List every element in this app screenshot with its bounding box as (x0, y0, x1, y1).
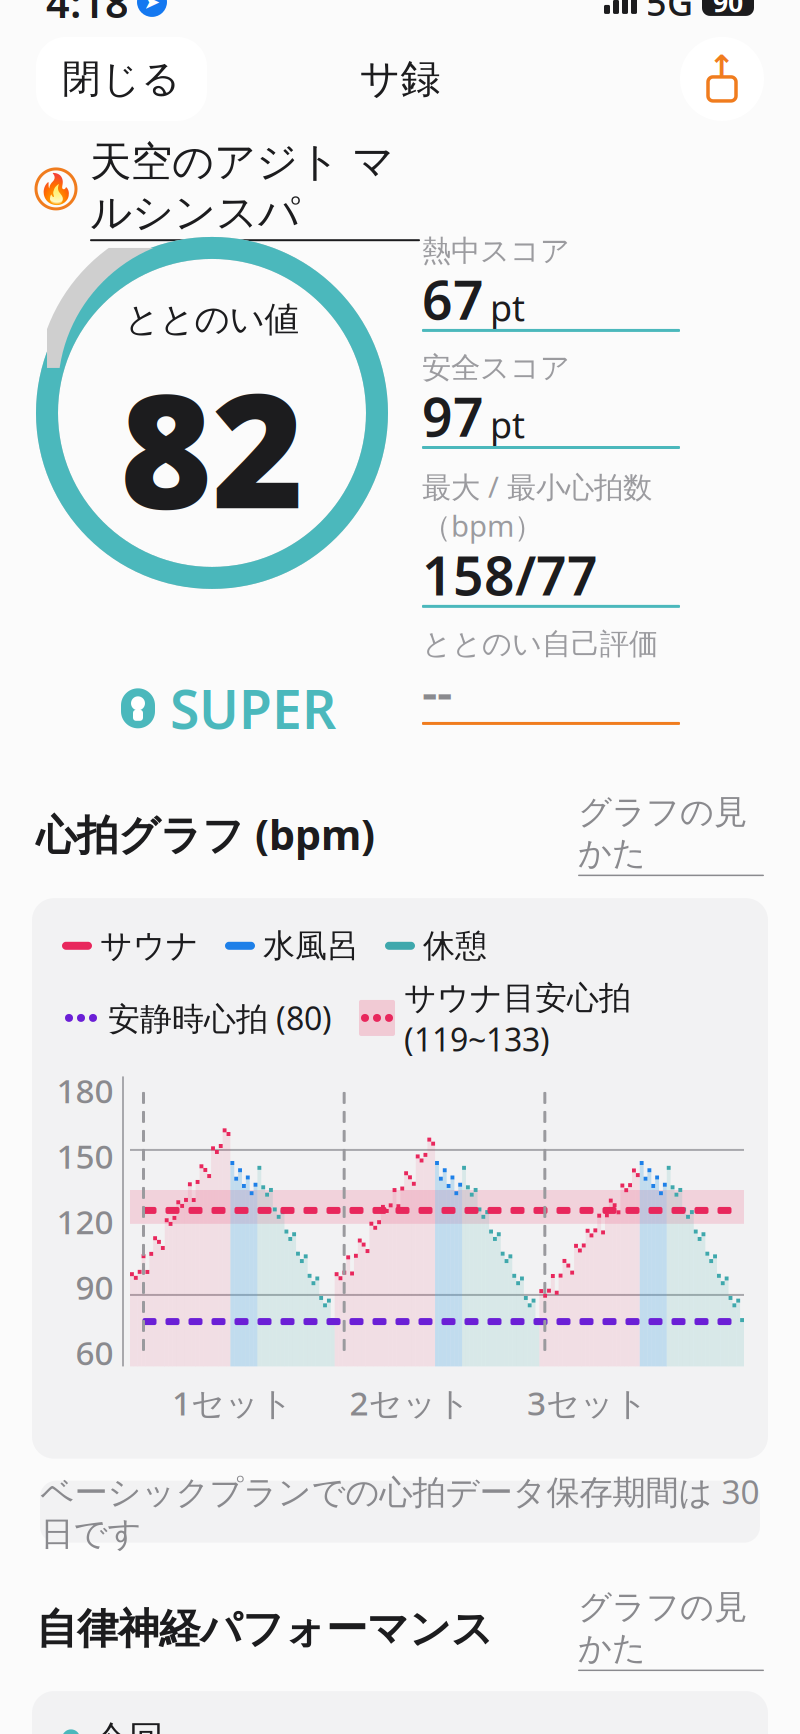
staticText: 天空のアジト マルシンスパ (90, 137, 394, 238)
staticText: 4:18 (46, 0, 129, 29)
staticText: 閉じる (62, 55, 181, 103)
staticText: 熱中スコア (422, 233, 570, 269)
staticText: ➤ (143, 0, 160, 13)
staticText: 67 (422, 263, 484, 334)
staticText: -- (422, 660, 452, 724)
staticText: グラフの見かた (578, 792, 747, 874)
staticText: 🔥 (37, 172, 74, 206)
staticText: 安全スコア (422, 350, 570, 386)
staticText: 97 (422, 381, 484, 451)
staticText: 安静時心拍 (80) (108, 997, 332, 1039)
staticText: 90 (75, 1265, 113, 1309)
staticText: 今回 (94, 1717, 164, 1734)
staticText: 休憩 (423, 926, 487, 965)
staticText: pt (490, 401, 525, 448)
button[interactable]: 閉じる (36, 37, 207, 121)
staticText: サウナ目安心拍 (119~133) (404, 975, 631, 1060)
staticText: 150 (56, 1134, 113, 1178)
staticText: ととのい値 (124, 298, 299, 341)
button[interactable]: 共有 (680, 37, 764, 121)
staticText: ベーシックプランでの心拍データ保存期間は 30日です (40, 1469, 759, 1554)
button[interactable]: グラフの見かた (578, 792, 764, 876)
staticText: ↑ (708, 49, 735, 85)
staticText: 水風呂 (263, 926, 359, 965)
button[interactable]: 🔥 (0, 159, 800, 219)
staticText: 最大 / 最小心拍数（bpm） (422, 467, 652, 545)
staticText: 82 (120, 343, 304, 552)
staticText: 心拍グラフ (bpm) (36, 806, 375, 861)
staticText: 自律神経パフォーマンス (36, 1603, 493, 1654)
staticText: グラフの見かた (578, 1587, 747, 1669)
staticText: 180 (56, 1068, 113, 1113)
staticText: 158/77 (422, 539, 598, 610)
staticText: 60 (75, 1330, 113, 1375)
staticText: pt (490, 284, 525, 331)
staticText: 1セット (172, 1380, 293, 1425)
staticText: 2セット (349, 1380, 470, 1425)
staticText: 120 (56, 1199, 113, 1244)
staticText: サ録 (359, 54, 440, 103)
staticText: 3セット (527, 1380, 648, 1425)
staticText: ととのい自己評価 (422, 626, 658, 662)
staticText: 5G (646, 0, 693, 26)
staticText: サウナ (100, 926, 199, 965)
staticText: 90 (713, 0, 743, 20)
button[interactable]: グラフの見かた (578, 1587, 764, 1671)
staticText: SUPER (170, 673, 336, 744)
